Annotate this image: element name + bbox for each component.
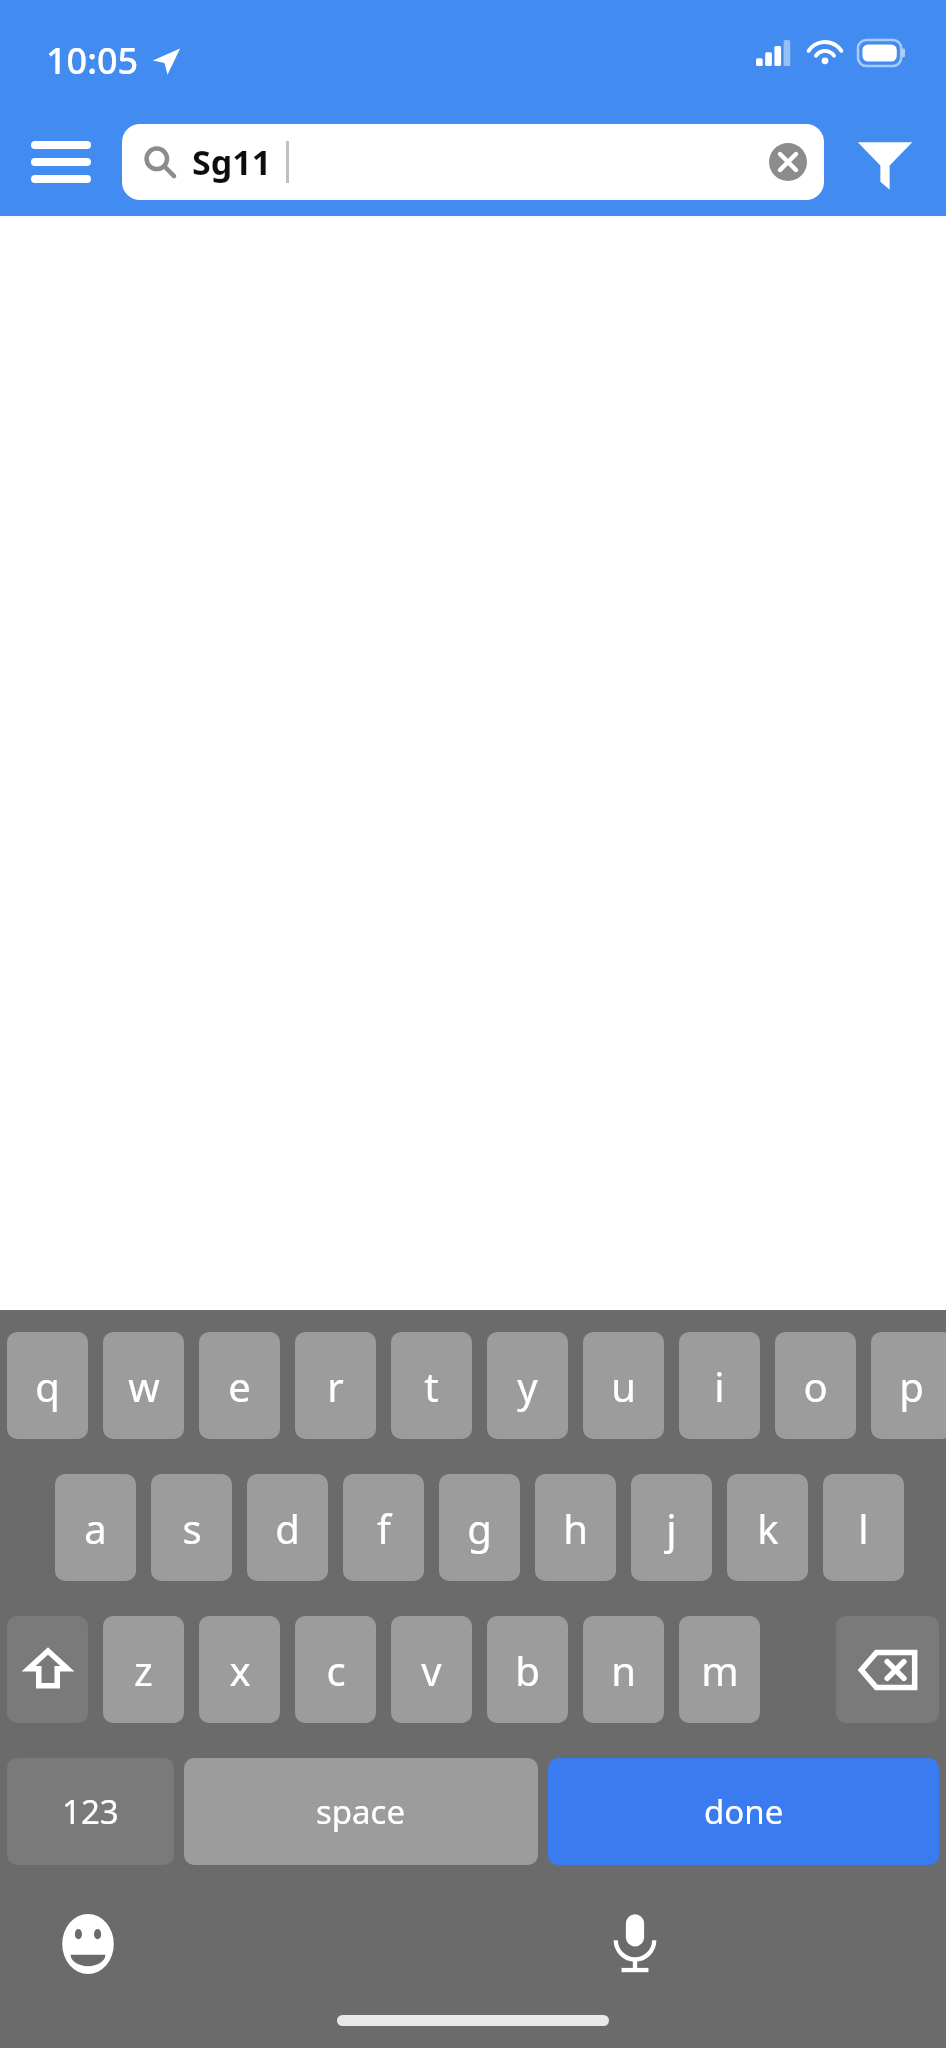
- staticText: z: [134, 1643, 153, 1697]
- button[interactable]: g: [439, 1474, 520, 1581]
- button[interactable]: f: [343, 1474, 424, 1581]
- button[interactable]: n: [583, 1616, 664, 1723]
- staticText: a: [84, 1501, 107, 1555]
- button[interactable]: e: [199, 1332, 280, 1439]
- staticText: c: [326, 1643, 346, 1697]
- button[interactable]: b: [487, 1616, 568, 1723]
- staticText: q: [35, 1359, 60, 1413]
- staticText: j: [666, 1501, 677, 1555]
- button[interactable]: Emoji keyboard: [57, 1913, 119, 1975]
- staticText: p: [899, 1359, 924, 1413]
- button[interactable]: done: [548, 1758, 939, 1865]
- staticText: u: [611, 1359, 636, 1413]
- staticText: m: [701, 1643, 739, 1697]
- button[interactable]: Clear text: [768, 142, 808, 182]
- button[interactable]: m: [679, 1616, 760, 1723]
- button[interactable]: Shift: [7, 1616, 88, 1723]
- staticText: t: [424, 1359, 439, 1413]
- staticText: g: [467, 1501, 492, 1555]
- button[interactable]: space: [184, 1758, 538, 1865]
- staticText: e: [228, 1359, 251, 1413]
- button[interactable]: s: [151, 1474, 232, 1581]
- staticText: i: [714, 1359, 725, 1413]
- staticText: o: [803, 1359, 828, 1413]
- staticText: k: [757, 1501, 779, 1555]
- button[interactable]: o: [775, 1332, 856, 1439]
- button[interactable]: y: [487, 1332, 568, 1439]
- staticText: done: [704, 1789, 784, 1834]
- button[interactable]: u: [583, 1332, 664, 1439]
- staticText: l: [858, 1501, 869, 1555]
- button[interactable]: c: [295, 1616, 376, 1723]
- staticText: d: [275, 1501, 300, 1555]
- button[interactable]: Sg11: [122, 124, 824, 200]
- button[interactable]: z: [103, 1616, 184, 1723]
- staticText: 10:05: [46, 36, 139, 85]
- button[interactable]: k: [727, 1474, 808, 1581]
- button[interactable]: j: [631, 1474, 712, 1581]
- staticText: x: [229, 1643, 251, 1697]
- staticText: h: [563, 1501, 588, 1555]
- button[interactable]: i: [679, 1332, 760, 1439]
- button[interactable]: l: [823, 1474, 904, 1581]
- button[interactable]: q: [7, 1332, 88, 1439]
- button[interactable]: a: [55, 1474, 136, 1581]
- staticText: v: [421, 1643, 442, 1697]
- button[interactable]: w: [103, 1332, 184, 1439]
- button[interactable]: Filter: [824, 108, 946, 216]
- staticText: r: [327, 1359, 344, 1413]
- button[interactable]: Menu: [0, 108, 122, 216]
- button[interactable]: h: [535, 1474, 616, 1581]
- staticText: y: [517, 1359, 538, 1413]
- button[interactable]: v: [391, 1616, 472, 1723]
- button[interactable]: 123: [7, 1758, 174, 1865]
- staticText: space: [316, 1789, 406, 1834]
- staticText: s: [182, 1501, 202, 1555]
- button[interactable]: Backspace: [836, 1616, 939, 1723]
- button[interactable]: Voice input: [604, 1913, 666, 1975]
- staticText: f: [377, 1501, 391, 1555]
- staticText: Sg11: [192, 139, 272, 185]
- staticText: n: [611, 1643, 636, 1697]
- staticText: w: [128, 1359, 160, 1413]
- button[interactable]: r: [295, 1332, 376, 1439]
- button[interactable]: t: [391, 1332, 472, 1439]
- staticText: 123: [62, 1789, 119, 1834]
- button[interactable]: d: [247, 1474, 328, 1581]
- staticText: b: [515, 1643, 540, 1697]
- button[interactable]: p: [871, 1332, 946, 1439]
- button[interactable]: x: [199, 1616, 280, 1723]
